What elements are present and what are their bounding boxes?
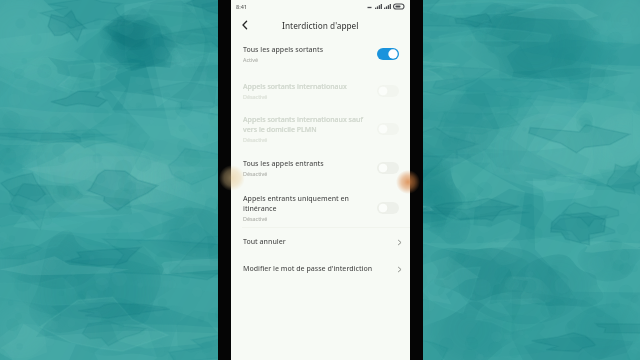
staticText: Désactivé — [243, 136, 268, 143]
staticText: Tout annuler — [243, 237, 396, 247]
button[interactable]: Toggle — [377, 85, 399, 97]
button[interactable]: Toggle — [377, 123, 399, 135]
staticText: Désactivé — [243, 215, 268, 222]
button[interactable]: Appels sortants internationaux sauf vers… — [231, 110, 410, 147]
button[interactable]: Appels entrants uniquement en itinérance — [231, 188, 410, 227]
staticText: Interdiction d'appel — [282, 20, 359, 31]
staticText: Tous les appels entrants — [243, 159, 324, 169]
button[interactable]: Toggle — [377, 202, 399, 214]
button[interactable]: Appels sortants internationaux — [231, 71, 410, 110]
staticText: Tous les appels sortants — [243, 45, 324, 55]
button[interactable]: Back — [234, 14, 256, 36]
staticText: 8:41 — [236, 3, 247, 10]
button[interactable]: Modifier le mot de passe d'interdiction — [231, 256, 410, 282]
staticText: Activé — [243, 56, 259, 63]
staticText: Désactivé — [243, 93, 268, 100]
staticText: Appels sortants internationaux — [243, 82, 347, 92]
staticText: Appels sortants internationaux sauf vers… — [243, 115, 369, 135]
button[interactable]: Tout annuler — [231, 228, 410, 256]
button[interactable]: Toggle — [377, 48, 399, 60]
button[interactable]: Tous les appels sortants — [231, 36, 410, 71]
button[interactable]: Toggle — [377, 162, 399, 174]
button[interactable]: Tous les appels entrants — [231, 147, 410, 188]
staticText: Modifier le mot de passe d'interdiction — [243, 264, 396, 274]
staticText: Appels entrants uniquement en itinérance — [243, 194, 369, 214]
staticText: Désactivé — [243, 170, 268, 177]
